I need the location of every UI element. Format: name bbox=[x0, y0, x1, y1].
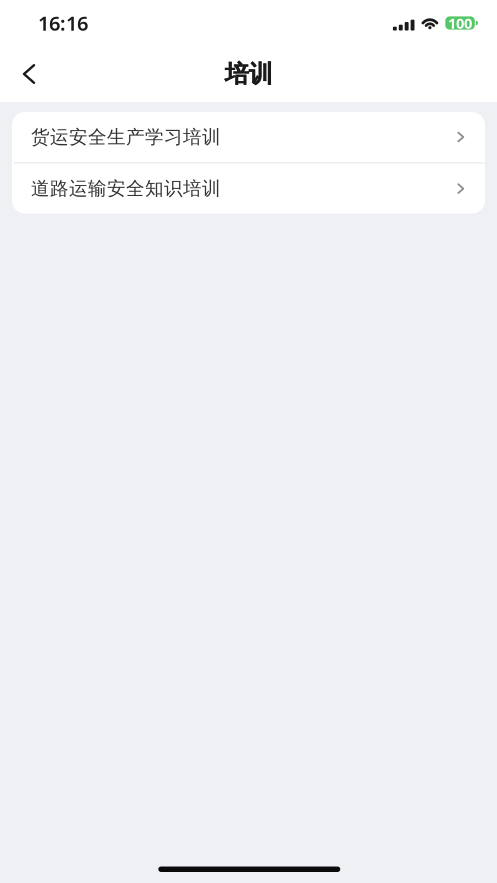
staticText: 16:16 bbox=[38, 10, 88, 36]
staticText: 培训 bbox=[225, 59, 273, 89]
button[interactable]: 货运安全生产学习培训 bbox=[12, 112, 485, 162]
staticText: 道路运输安全知识培训 bbox=[31, 177, 221, 200]
staticText: 货运安全生产学习培训 bbox=[31, 125, 221, 149]
button[interactable]: 道路运输安全知识培训 bbox=[12, 164, 485, 214]
staticText: 培训 bbox=[224, 59, 272, 89]
button[interactable]: Back bbox=[6, 45, 52, 103]
staticText: 100 bbox=[448, 13, 472, 33]
